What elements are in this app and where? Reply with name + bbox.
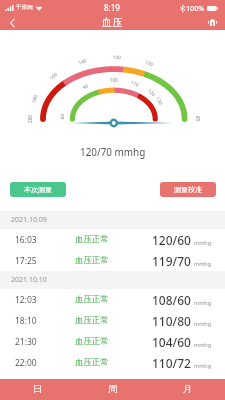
staticText: 119/70 xyxy=(152,253,191,269)
button[interactable]: Connect device xyxy=(199,15,225,30)
staticText: mmhg xyxy=(194,239,212,246)
staticText: 17:25 xyxy=(15,255,37,267)
staticText: 108/60 xyxy=(152,292,191,308)
staticText: mmhg xyxy=(194,299,212,306)
button[interactable]: 周 xyxy=(75,379,150,400)
staticText: 110/72 xyxy=(152,355,191,371)
staticText: 120/70 mmhg xyxy=(80,145,146,158)
staticText: 血压正常 xyxy=(75,357,109,368)
staticText: mmhg xyxy=(194,362,212,369)
staticText: 100% xyxy=(186,3,205,13)
staticText: 22:00 xyxy=(15,357,37,369)
button[interactable]: 22:00 xyxy=(0,352,225,373)
staticText: 周 xyxy=(108,383,118,395)
staticText: 8:19 xyxy=(104,2,120,13)
button[interactable]: 17:25 xyxy=(0,250,225,271)
staticText: 血压正常 xyxy=(75,336,109,347)
staticText: 血压正常 xyxy=(75,234,109,245)
button[interactable]: 12:03 xyxy=(0,289,225,310)
staticText: 18:10 xyxy=(15,315,37,327)
button[interactable]: 16:03 xyxy=(0,229,225,250)
staticText: 千库网 xyxy=(16,4,33,11)
button[interactable]: 日 xyxy=(0,379,75,400)
staticText: 120/60 xyxy=(152,232,191,248)
staticText: mmhg xyxy=(194,341,212,348)
staticText: 日 xyxy=(33,383,43,395)
button[interactable]: 18:10 xyxy=(0,310,225,331)
staticText: 2021.10.09 xyxy=(11,215,47,225)
button[interactable]: 测量校准 xyxy=(160,182,216,197)
button[interactable]: Back xyxy=(0,15,24,30)
staticText: 血压正常 xyxy=(75,315,109,326)
staticText: 血压 xyxy=(102,16,123,29)
staticText: 2021.10.10 xyxy=(11,275,47,285)
staticText: 12:03 xyxy=(15,294,37,306)
staticText: mmhg xyxy=(194,320,212,327)
staticText: mmhg xyxy=(194,260,212,267)
staticText: 110/80 xyxy=(152,313,191,329)
staticText: 21:30 xyxy=(15,336,37,348)
staticText: 月 xyxy=(183,383,193,395)
staticText: 血压正常 xyxy=(75,255,109,266)
staticText: 测量校准 xyxy=(174,185,202,194)
staticText: 104/60 xyxy=(152,334,191,350)
staticText: 血压正常 xyxy=(75,294,109,305)
staticText: 16:03 xyxy=(15,234,37,246)
button[interactable]: 月 xyxy=(150,379,225,400)
button[interactable]: 本次测量 xyxy=(10,182,66,197)
staticText: 本次测量 xyxy=(24,185,52,194)
button[interactable]: 21:30 xyxy=(0,331,225,352)
